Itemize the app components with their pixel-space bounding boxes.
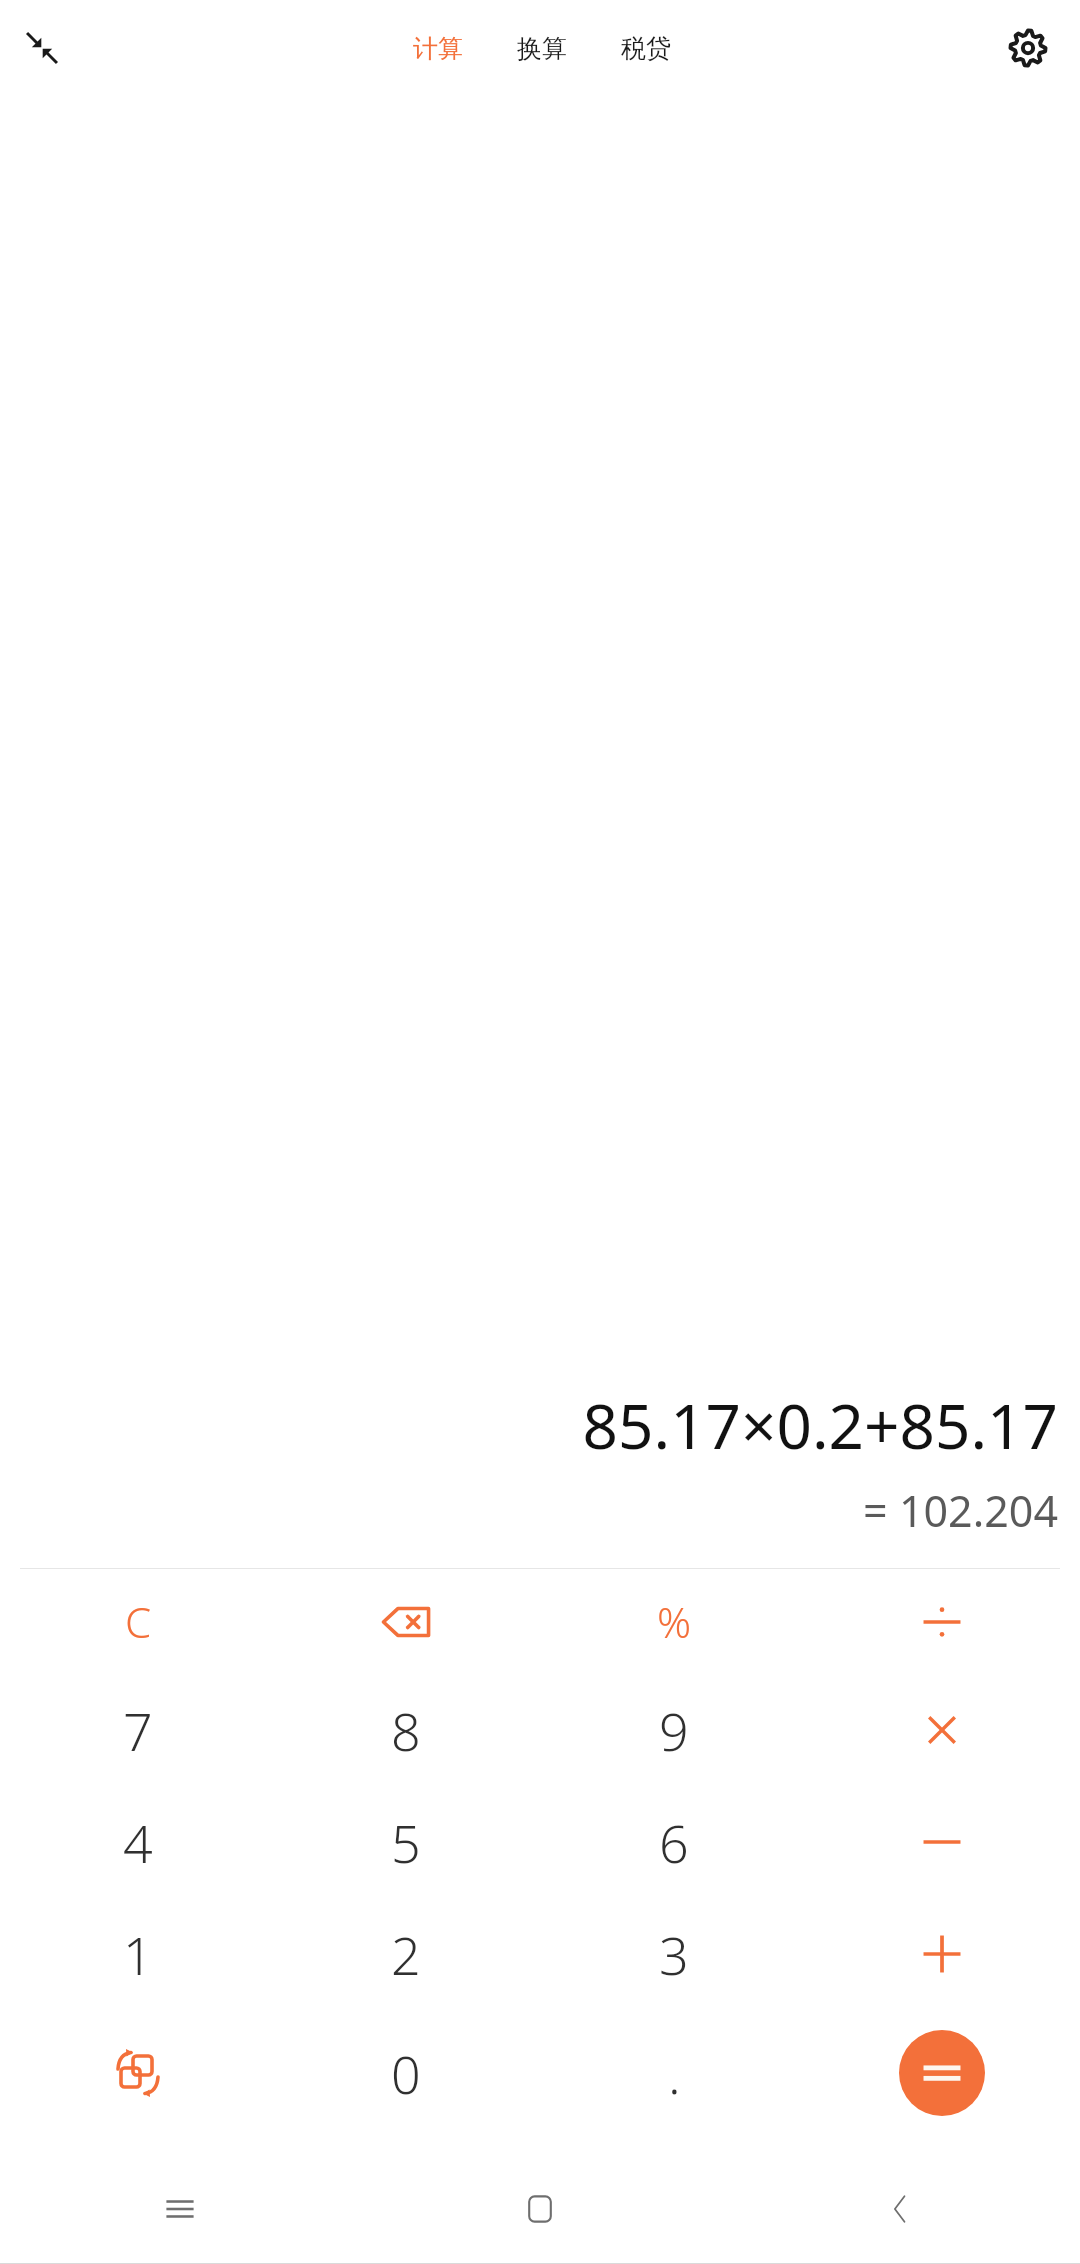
button[interactable]: 换算 — [507, 25, 577, 72]
button[interactable]: 0 — [272, 2010, 540, 2136]
button[interactable]: 5 — [272, 1786, 540, 1898]
button[interactable]: . — [540, 2010, 808, 2136]
button[interactable]: Settings — [996, 16, 1060, 80]
staticText: 0 — [391, 2038, 421, 2109]
staticText: 7 — [123, 1695, 153, 1766]
staticText: 2 — [391, 1919, 421, 1990]
staticText: 9 — [659, 1695, 689, 1766]
button[interactable]: 1 — [4, 1898, 272, 2010]
staticText: 换算 — [517, 33, 567, 64]
staticText: 6 — [659, 1807, 689, 1878]
staticText: 8 — [391, 1695, 421, 1766]
staticText: 计算 — [413, 33, 463, 64]
staticText: 3 — [659, 1919, 689, 1990]
staticText: C — [125, 1593, 152, 1650]
button[interactable]: Minus — [808, 1786, 1076, 1898]
button[interactable]: Home — [360, 2154, 720, 2264]
button[interactable]: Recents — [0, 2154, 360, 2264]
staticText: = 102.204 — [863, 1481, 1058, 1540]
staticText: 85.17×0.2+85.17 — [582, 1383, 1058, 1467]
staticText: 5 — [391, 1807, 421, 1878]
button[interactable]: Convert — [4, 2010, 272, 2136]
button[interactable]: 计算 — [403, 25, 473, 72]
button[interactable]: 税贷 — [611, 25, 681, 72]
staticText: 4 — [123, 1807, 153, 1878]
staticText: 税贷 — [621, 33, 671, 64]
button[interactable]: 8 — [272, 1674, 540, 1786]
button[interactable]: Equals — [899, 2030, 985, 2116]
button[interactable]: Collapse — [10, 16, 74, 80]
staticText: % — [657, 1593, 692, 1650]
staticText: 1 — [123, 1919, 153, 1990]
button[interactable]: 6 — [540, 1786, 808, 1898]
staticText: . — [668, 2038, 681, 2109]
button[interactable]: Plus — [808, 1898, 1076, 2010]
button[interactable]: C — [4, 1569, 272, 1674]
button[interactable]: Backspace — [272, 1569, 540, 1674]
button[interactable]: 9 — [540, 1674, 808, 1786]
button[interactable]: 4 — [4, 1786, 272, 1898]
button[interactable]: Back — [720, 2154, 1080, 2264]
button[interactable]: Multiply — [808, 1674, 1076, 1786]
button[interactable]: % — [540, 1569, 808, 1674]
button[interactable]: Divide — [808, 1569, 1076, 1674]
button[interactable]: 2 — [272, 1898, 540, 2010]
button[interactable]: 3 — [540, 1898, 808, 2010]
button[interactable]: 7 — [4, 1674, 272, 1786]
